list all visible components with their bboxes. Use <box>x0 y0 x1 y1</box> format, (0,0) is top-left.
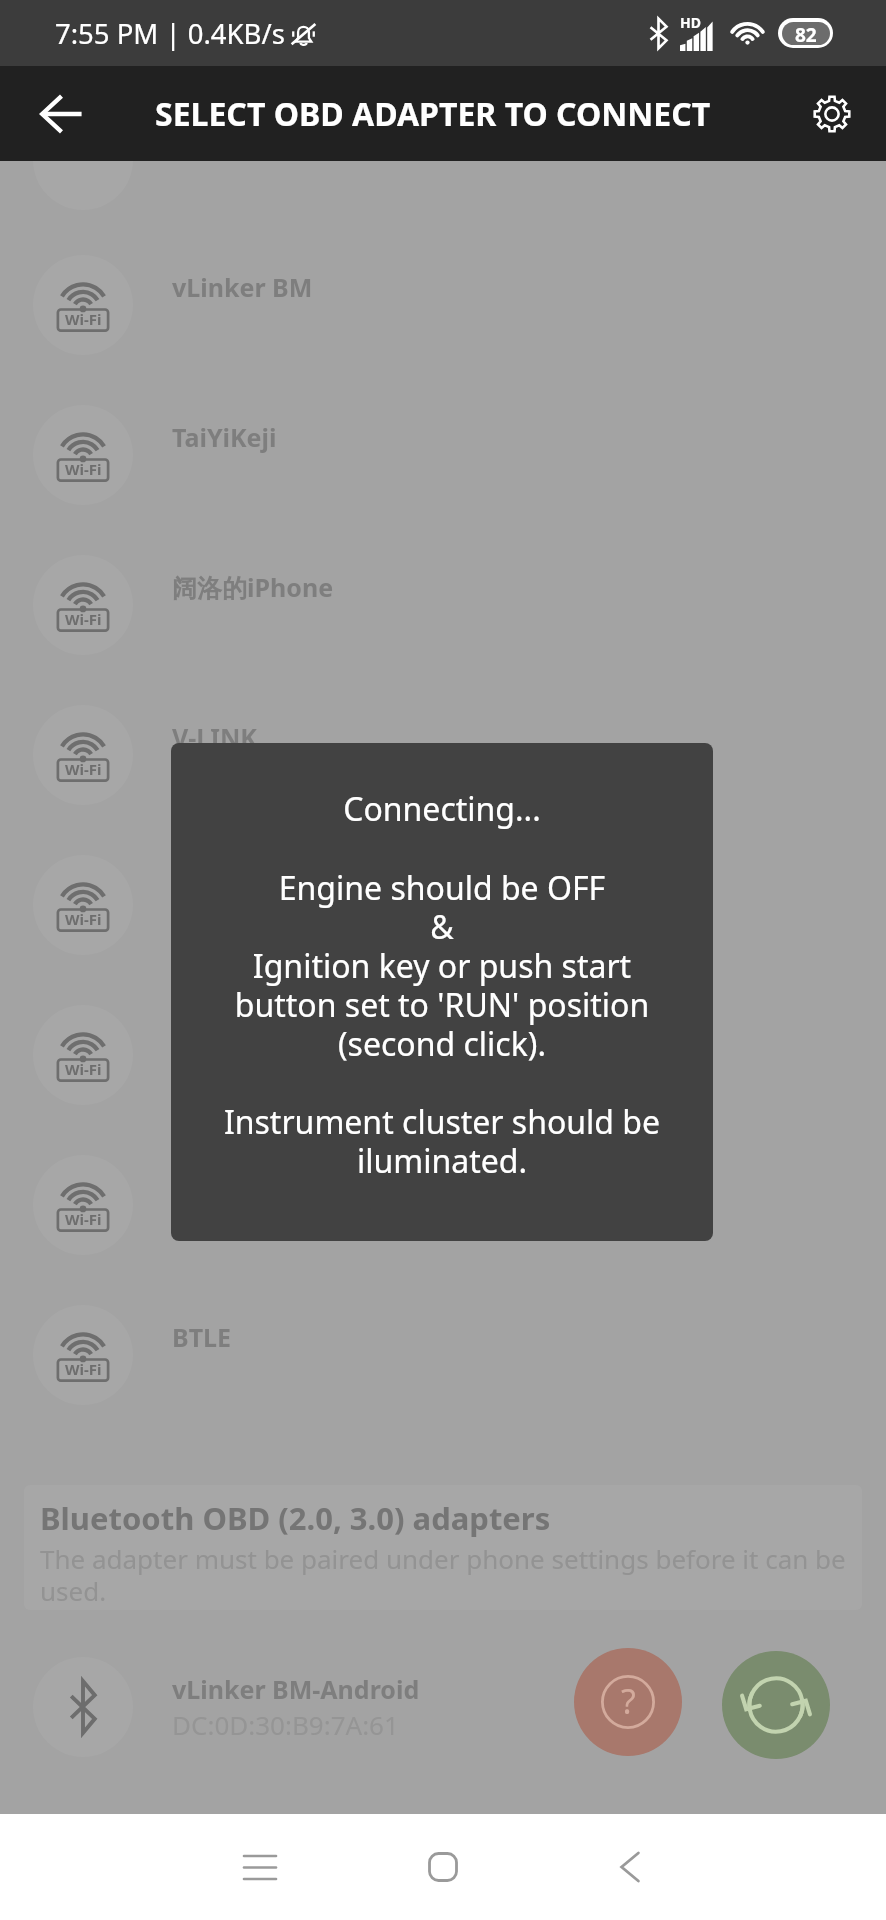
staticText: The adapter must be paired under phone s… <box>40 1541 858 1609</box>
staticText: vLinker BM <box>172 270 313 304</box>
staticText: Connecting... Engine should be OFF & Ign… <box>179 787 705 1182</box>
button[interactable]: Wi-Fi <box>0 1280 886 1430</box>
staticText: ? <box>621 1678 636 1724</box>
button[interactable]: Help <box>574 1648 682 1756</box>
staticText: Wi-Fi <box>65 1359 102 1379</box>
button[interactable]: Wi-Fi <box>0 980 886 1130</box>
button[interactable]: vLinker BM-Android <box>0 1632 886 1782</box>
button[interactable]: Refresh <box>722 1651 830 1759</box>
staticText: Wi-Fi <box>65 1209 102 1229</box>
staticText: TaiYiKeji <box>172 420 277 454</box>
button[interactable]: Home <box>403 1827 483 1907</box>
button[interactable]: Settings <box>797 79 867 149</box>
staticText: Wi-Fi <box>65 609 102 629</box>
button[interactable]: Wi-Fi <box>0 380 886 530</box>
staticText: 阔洛的iPhone <box>172 570 334 604</box>
button[interactable]: Recent apps <box>220 1827 300 1907</box>
button[interactable]: Back <box>19 72 103 156</box>
staticText: BTLE <box>172 1320 232 1354</box>
staticText: Bluetooth OBD (2.0, 3.0) adapters <box>40 1497 551 1539</box>
button[interactable]: Wi-Fi <box>0 680 886 830</box>
staticText: DC:0D:30:B9:7A:61 <box>172 1707 399 1742</box>
staticText: Wi-Fi <box>65 309 102 329</box>
staticText: 7:55 PM | 0.4KB/s <box>55 15 285 52</box>
button[interactable]: Back <box>590 1827 670 1907</box>
staticText: Wi-Fi <box>65 909 102 929</box>
staticText: vLinker BM-Android <box>172 1672 420 1706</box>
staticText: Wi-Fi <box>65 759 102 779</box>
staticText: SELECT OBD ADAPTER TO CONNECT <box>155 92 711 136</box>
staticText: Wi-Fi <box>65 1059 102 1079</box>
staticText: HD <box>680 13 701 32</box>
button[interactable]: Wi-Fi <box>0 530 886 680</box>
button[interactable]: Wi-Fi <box>0 830 886 980</box>
button[interactable]: Wi-Fi <box>0 1130 886 1280</box>
button[interactable]: Wi-Fi <box>0 230 886 380</box>
staticText: 82 <box>795 22 817 45</box>
staticText: Wi-Fi <box>65 459 102 479</box>
staticText: V-LINK <box>172 720 257 754</box>
